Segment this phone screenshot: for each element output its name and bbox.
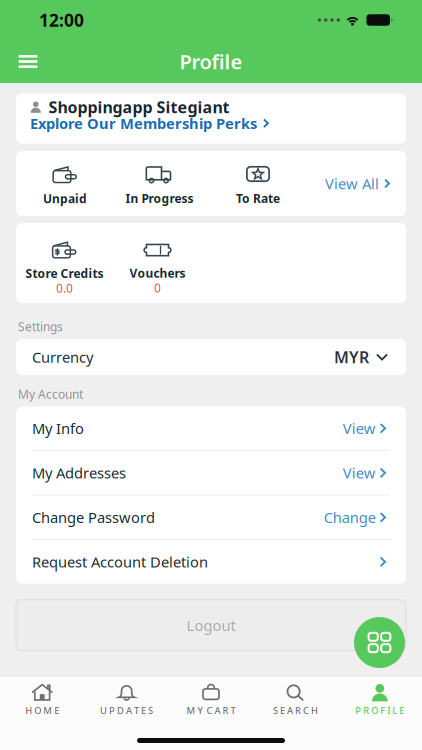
staticText: Profile xyxy=(179,48,242,75)
button[interactable]: To Rate xyxy=(205,161,311,206)
staticText: MYR xyxy=(334,346,369,368)
staticText: Change Password xyxy=(32,508,155,527)
button[interactable]: H O M E xyxy=(0,680,84,720)
staticText: M Y C A R T xyxy=(186,704,235,717)
staticText: View xyxy=(343,463,376,483)
staticText: S E A R C H xyxy=(273,704,318,717)
button[interactable]: S E A R C H xyxy=(253,680,338,720)
staticText: Request Account Deletion xyxy=(32,552,208,572)
staticText: View xyxy=(343,419,376,438)
button[interactable]: Unpaid xyxy=(16,160,114,206)
staticText: P R O F I L E xyxy=(355,704,404,717)
staticText: 12:00 xyxy=(39,8,84,31)
staticText: My Info xyxy=(32,419,84,438)
button[interactable]: Store Credits xyxy=(16,230,113,296)
button[interactable]: Logout xyxy=(16,600,406,651)
button[interactable]: View All xyxy=(325,163,406,203)
button[interactable]: My Addresses xyxy=(16,451,406,495)
button[interactable]: Quick actions xyxy=(352,617,407,668)
staticText: Logout xyxy=(186,615,235,635)
staticText: Shoppingapp Sitegiant xyxy=(48,96,229,118)
staticText: Currency xyxy=(32,347,93,367)
staticText: Settings xyxy=(18,318,63,334)
staticText: In Progress xyxy=(125,190,193,206)
button[interactable]: Menu xyxy=(8,40,48,82)
staticText: 0.0 xyxy=(56,280,73,296)
button[interactable]: My Info xyxy=(16,406,406,450)
staticText: Change xyxy=(324,508,376,527)
staticText: To Rate xyxy=(236,190,280,206)
staticText: U P D A T E S xyxy=(100,704,153,717)
staticText: View All xyxy=(325,174,379,193)
staticText: My Account xyxy=(18,386,83,402)
staticText: My Addresses xyxy=(32,463,126,483)
staticText: Vouchers xyxy=(129,265,185,281)
button[interactable]: U P D A T E S xyxy=(84,680,169,720)
staticText: Explore Our Membership Perks xyxy=(30,113,257,133)
button[interactable]: Change Password xyxy=(16,495,406,539)
button[interactable]: Request Account Deletion xyxy=(16,540,406,584)
button[interactable]: Currency xyxy=(16,339,406,375)
staticText: Unpaid xyxy=(43,190,87,206)
staticText: 0 xyxy=(154,280,161,296)
staticText: H O M E xyxy=(25,704,59,717)
button[interactable]: P R O F I L E xyxy=(338,680,422,720)
staticText: Store Credits xyxy=(25,265,103,281)
button[interactable]: Vouchers xyxy=(113,230,202,296)
button[interactable]: Shoppingapp Sitegiant xyxy=(16,93,406,143)
button[interactable]: M Y C A R T xyxy=(169,680,253,720)
button[interactable]: In Progress xyxy=(114,161,205,206)
